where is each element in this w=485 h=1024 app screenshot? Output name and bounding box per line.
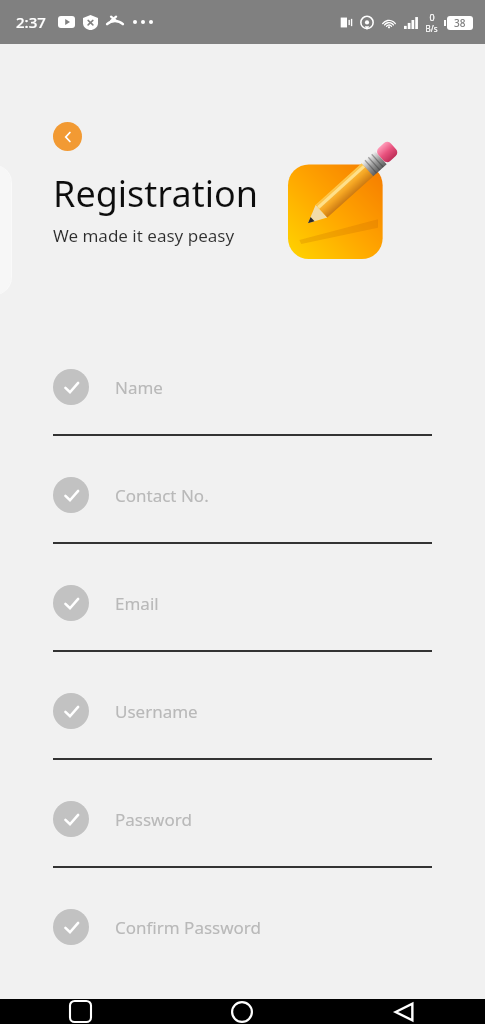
staticText: Password <box>115 808 192 831</box>
button[interactable]: Password <box>0 783 485 891</box>
staticText: We made it easy peasy <box>53 224 235 247</box>
staticText: 0 <box>429 11 435 23</box>
staticText: 2:37 <box>16 12 46 32</box>
button[interactable]: Name <box>0 351 485 459</box>
staticText: Email <box>115 592 159 615</box>
button[interactable]: Recent apps <box>0 999 161 1024</box>
staticText: Contact No. <box>115 484 209 507</box>
button[interactable]: Contact No. <box>0 459 485 567</box>
button[interactable]: Back <box>53 122 82 151</box>
staticText: Confirm Password <box>115 916 261 939</box>
button[interactable]: Back <box>323 999 485 1024</box>
staticText: B/s <box>425 23 438 34</box>
staticText: Username <box>115 700 198 723</box>
staticText: 38 <box>454 16 466 30</box>
button[interactable]: Home <box>161 999 323 1024</box>
staticText: Name <box>115 376 163 399</box>
button[interactable]: Confirm Password <box>0 891 485 999</box>
button[interactable]: Username <box>0 675 485 783</box>
staticText: Registration <box>53 169 259 218</box>
button[interactable]: Email <box>0 567 485 675</box>
